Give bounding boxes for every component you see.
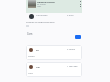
- button[interactable]: [26, 13, 82, 18]
- button[interactable]: [26, 45, 82, 60]
- button[interactable]: More options: [79, 1, 81, 7]
- staticText: Cambridge Neighbors Assoc: [36, 14, 58, 17]
- staticText: Comments: [27, 32, 34, 35]
- staticText: Alex: [36, 65, 41, 68]
- staticText: Thanks to everyone who came out to help …: [26, 20, 61, 23]
- button[interactable]: Post comment: [75, 35, 81, 39]
- button[interactable]: [26, 62, 82, 77]
- staticText: Great!: [28, 55, 35, 58]
- staticText: 1 day ago: [67, 65, 78, 68]
- staticText: Helping Hands in Our Area: [37, 0, 55, 3]
- staticText: 4 hours ago: [67, 48, 79, 51]
- staticText: by Sarah Jones: [37, 3, 47, 6]
- staticText: Sam: [36, 48, 41, 51]
- staticText: 2 days ago: [67, 14, 78, 17]
- button[interactable]: [26, 0, 82, 13]
- staticText: Nice: [28, 72, 33, 75]
- staticText: Mar 2024: [37, 5, 44, 8]
